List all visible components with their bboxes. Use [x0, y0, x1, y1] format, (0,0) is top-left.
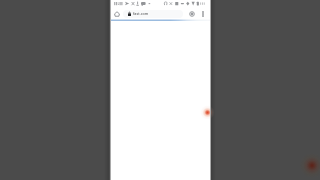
button[interactable]: Home: [112, 9, 122, 19]
button[interactable]: [123, 10, 183, 18]
button[interactable]: Page info: [187, 9, 197, 19]
button[interactable]: More options: [198, 9, 208, 19]
staticText: fast.com: [133, 11, 149, 16]
